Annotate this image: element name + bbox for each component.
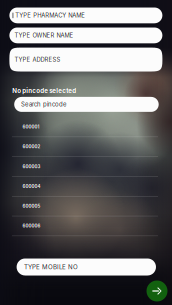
button[interactable]: Search pincode (14, 97, 159, 112)
button[interactable]: TYPE PHARMACY NAME (9, 7, 162, 23)
button[interactable]: TYPE MOBILE NO (17, 258, 156, 275)
button[interactable]: 600004 (12, 177, 158, 196)
button[interactable]: TYPE OWNER NAME (9, 27, 162, 43)
staticText: TYPE MOBILE NO (24, 263, 78, 271)
button[interactable]: 600001 (12, 117, 158, 137)
staticText: No pincode selected (12, 87, 76, 94)
staticText: 600003 (23, 164, 41, 169)
staticText: Search pincode (21, 101, 66, 108)
button[interactable]: TYPE ADDRESS (9, 48, 162, 71)
button[interactable]: 600006 (12, 216, 158, 236)
button[interactable]: 600005 (12, 196, 158, 216)
staticText: TYPE ADDRESS (15, 56, 61, 63)
staticText: 600004 (23, 184, 41, 189)
button[interactable]: 600003 (12, 157, 158, 177)
staticText: TYPE OWNER NAME (14, 32, 73, 39)
staticText: 600001 (23, 124, 40, 130)
staticText: 600006 (23, 223, 41, 229)
staticText: 600002 (23, 144, 41, 149)
button[interactable]: Next (146, 280, 167, 301)
button[interactable]: 600002 (12, 137, 158, 157)
staticText: 600005 (23, 203, 41, 209)
staticText: TYPE PHARMACY NAME (15, 12, 85, 19)
